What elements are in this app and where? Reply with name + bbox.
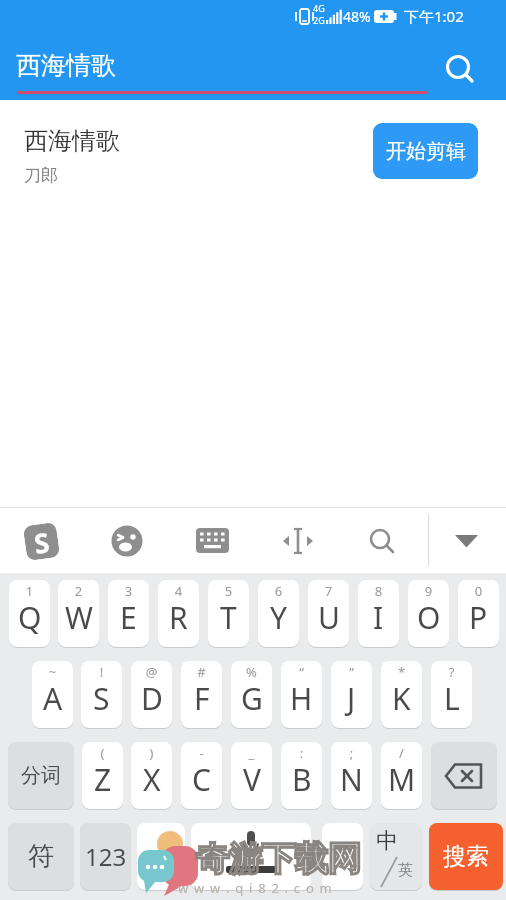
button[interactable]: ? — [431, 661, 472, 728]
staticText: A — [43, 678, 63, 719]
staticText: P — [469, 597, 488, 638]
staticText: 下午1:02 — [404, 6, 464, 26]
button[interactable]: 搜索 — [429, 823, 503, 890]
staticText: B — [292, 759, 312, 800]
staticText: “ — [281, 663, 322, 679]
button[interactable]: : — [281, 742, 322, 809]
button[interactable] — [0, 0, 506, 100]
staticText: J — [347, 678, 356, 719]
staticText: F — [194, 678, 210, 719]
staticText: / — [381, 744, 422, 760]
staticText: 英 — [398, 861, 413, 880]
button[interactable]: 4 — [158, 580, 199, 647]
staticText: 2 — [58, 582, 99, 598]
staticText: I — [373, 597, 384, 638]
button[interactable]: 1 — [9, 580, 50, 647]
staticText: 符 — [28, 840, 54, 873]
staticText: ~ — [32, 663, 73, 679]
button[interactable] — [455, 535, 479, 549]
staticText: ) — [131, 744, 172, 760]
button[interactable]: ( — [82, 742, 123, 809]
staticText: 4 — [158, 582, 199, 598]
button[interactable]: % — [231, 661, 272, 728]
button[interactable] — [367, 526, 399, 558]
staticText: ; — [331, 744, 372, 760]
staticText: 2G — [313, 14, 325, 26]
staticText: Q — [18, 597, 42, 638]
button[interactable] — [281, 526, 315, 556]
staticText: 西海情歌 — [24, 126, 120, 156]
staticText: 刀郎 — [24, 165, 58, 186]
staticText: L — [444, 678, 460, 719]
button[interactable]: 开始剪辑 — [373, 123, 478, 179]
button[interactable] — [0, 101, 506, 201]
button[interactable]: 9 — [408, 580, 449, 647]
staticText: 西海情歌 — [16, 50, 116, 81]
staticText: # — [181, 663, 222, 679]
staticText: X — [143, 759, 161, 800]
staticText: Y — [270, 597, 287, 638]
button[interactable]: ! — [81, 661, 122, 728]
button[interactable]: ” — [331, 661, 372, 728]
button[interactable] — [196, 528, 229, 554]
staticText: 搜索 — [443, 842, 489, 871]
staticText: ( — [82, 744, 123, 760]
button[interactable]: * — [381, 661, 422, 728]
button[interactable]: 符 — [8, 823, 74, 890]
staticText: 7 — [308, 582, 349, 598]
button[interactable]: 8 — [358, 580, 399, 647]
staticText: _ — [231, 744, 272, 760]
button[interactable]: 2 — [58, 580, 99, 647]
staticText: M — [388, 759, 416, 800]
button[interactable] — [431, 742, 497, 809]
staticText: T — [220, 597, 237, 638]
button[interactable]: # — [181, 661, 222, 728]
staticText: S — [32, 523, 51, 560]
staticText: 8 — [358, 582, 399, 598]
staticText: ! — [81, 663, 122, 679]
staticText: 中 — [376, 827, 398, 855]
staticText: 48% — [343, 7, 371, 26]
button[interactable] — [109, 523, 145, 559]
button[interactable]: ) — [131, 742, 172, 809]
staticText: K — [392, 678, 411, 719]
staticText: D — [141, 678, 163, 719]
button[interactable]: 6 — [258, 580, 299, 647]
button[interactable]: _ — [231, 742, 272, 809]
staticText: : — [281, 744, 322, 760]
button[interactable]: 0 — [458, 580, 499, 647]
button[interactable]: 123 — [80, 823, 131, 890]
button[interactable] — [137, 823, 185, 890]
button[interactable]: 中 — [370, 823, 422, 890]
button[interactable]: 3 — [108, 580, 149, 647]
staticText: 奇游下载网 — [196, 838, 361, 880]
staticText: W — [65, 597, 93, 638]
button[interactable]: S — [23, 522, 60, 561]
button[interactable]: 5 — [208, 580, 249, 647]
button[interactable]: 分词 — [8, 742, 74, 809]
staticText: 1 — [9, 582, 50, 598]
staticText: O — [417, 597, 441, 638]
staticText: 3 — [108, 582, 149, 598]
staticText: E — [120, 597, 137, 638]
button[interactable]: ; — [331, 742, 372, 809]
button[interactable]: - — [181, 742, 222, 809]
button[interactable]: @ — [131, 661, 172, 728]
staticText: C — [192, 759, 211, 800]
button[interactable]: “ — [281, 661, 322, 728]
staticText: H — [290, 678, 313, 719]
staticText: 123 — [85, 840, 127, 873]
staticText: * — [381, 663, 422, 679]
button[interactable]: ~ — [32, 661, 73, 728]
staticText: - — [181, 744, 222, 760]
button[interactable] — [322, 823, 363, 890]
staticText: S — [93, 678, 110, 719]
staticText: ” — [331, 663, 372, 679]
button[interactable]: / — [381, 742, 422, 809]
staticText: Z — [94, 759, 112, 800]
button[interactable] — [191, 823, 311, 890]
button[interactable]: 7 — [308, 580, 349, 647]
staticText: % — [231, 663, 272, 679]
staticText: 4G — [313, 2, 325, 14]
staticText: R — [169, 597, 188, 638]
